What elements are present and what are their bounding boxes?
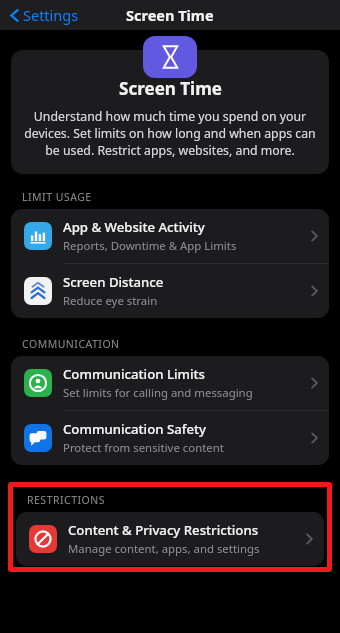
other: Communication Limits [24, 369, 52, 397]
other: Screen Distance [24, 277, 52, 305]
staticText: Understand how much time you spend on yo… [24, 108, 316, 159]
staticText: Set limits for calling and messaging [63, 385, 253, 401]
staticText: Manage content, apps, and settings [68, 541, 260, 557]
staticText: Screen Time [119, 77, 222, 100]
staticText: RESTRICTIONS [27, 493, 106, 507]
button[interactable]: Settings [7, 1, 82, 29]
staticText: Screen Distance [63, 273, 164, 291]
staticText: Content & Privacy Restrictions [68, 521, 259, 539]
staticText: Communication Limits [63, 365, 206, 383]
other: Communication Safety [24, 424, 52, 452]
button[interactable]: Communication Limits [11, 356, 329, 410]
button[interactable]: App and Website Activity [11, 209, 329, 263]
staticText: LIMIT USAGE [22, 190, 92, 204]
staticText: Screen Time [126, 5, 214, 25]
button[interactable]: Communication Safety [11, 411, 329, 465]
other: App and Website Activity [24, 222, 52, 250]
staticText: Communication Safety [63, 420, 206, 438]
staticText: COMMUNICATION [22, 337, 120, 351]
staticText: Settings [23, 5, 79, 25]
button[interactable]: Screen Distance [11, 264, 329, 318]
staticText: Reduce eye strain [63, 293, 158, 309]
staticText: Reports, Downtime & App Limits [63, 238, 237, 254]
staticText: Protect from sensitive content [63, 440, 224, 456]
button[interactable]: Content and Privacy Restrictions [16, 512, 324, 566]
other: Content and Privacy Restrictions [29, 525, 57, 553]
staticText: App & Website Activity [63, 218, 205, 236]
